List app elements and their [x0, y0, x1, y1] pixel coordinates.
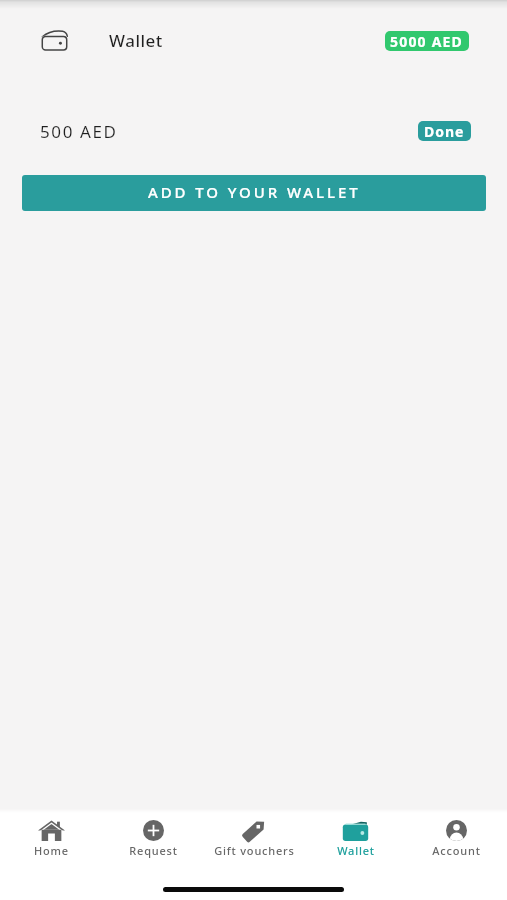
button[interactable]: Request [102, 809, 204, 900]
button[interactable]: ADD TO YOUR WALLET [22, 175, 486, 211]
button[interactable]: Gift vouchers [204, 809, 305, 900]
button[interactable]: Wallet [305, 809, 406, 900]
staticText: Wallet [109, 29, 163, 52]
staticText: Request [129, 843, 178, 858]
staticText: Wallet [337, 843, 375, 858]
staticText: Account [432, 843, 481, 858]
staticText: Done [424, 122, 465, 141]
staticText: ADD TO YOUR WALLET [148, 182, 361, 202]
staticText: 5000 AED [390, 32, 464, 51]
staticText: 500 AED [40, 120, 118, 143]
button[interactable]: Home [0, 809, 102, 900]
staticText: Home [34, 843, 69, 858]
button[interactable]: Wallet [34, 23, 74, 57]
staticText: Gift vouchers [214, 843, 295, 858]
button[interactable]: 5000 AED [385, 31, 469, 51]
button[interactable]: Done [418, 121, 471, 141]
button[interactable]: Account [406, 809, 507, 900]
